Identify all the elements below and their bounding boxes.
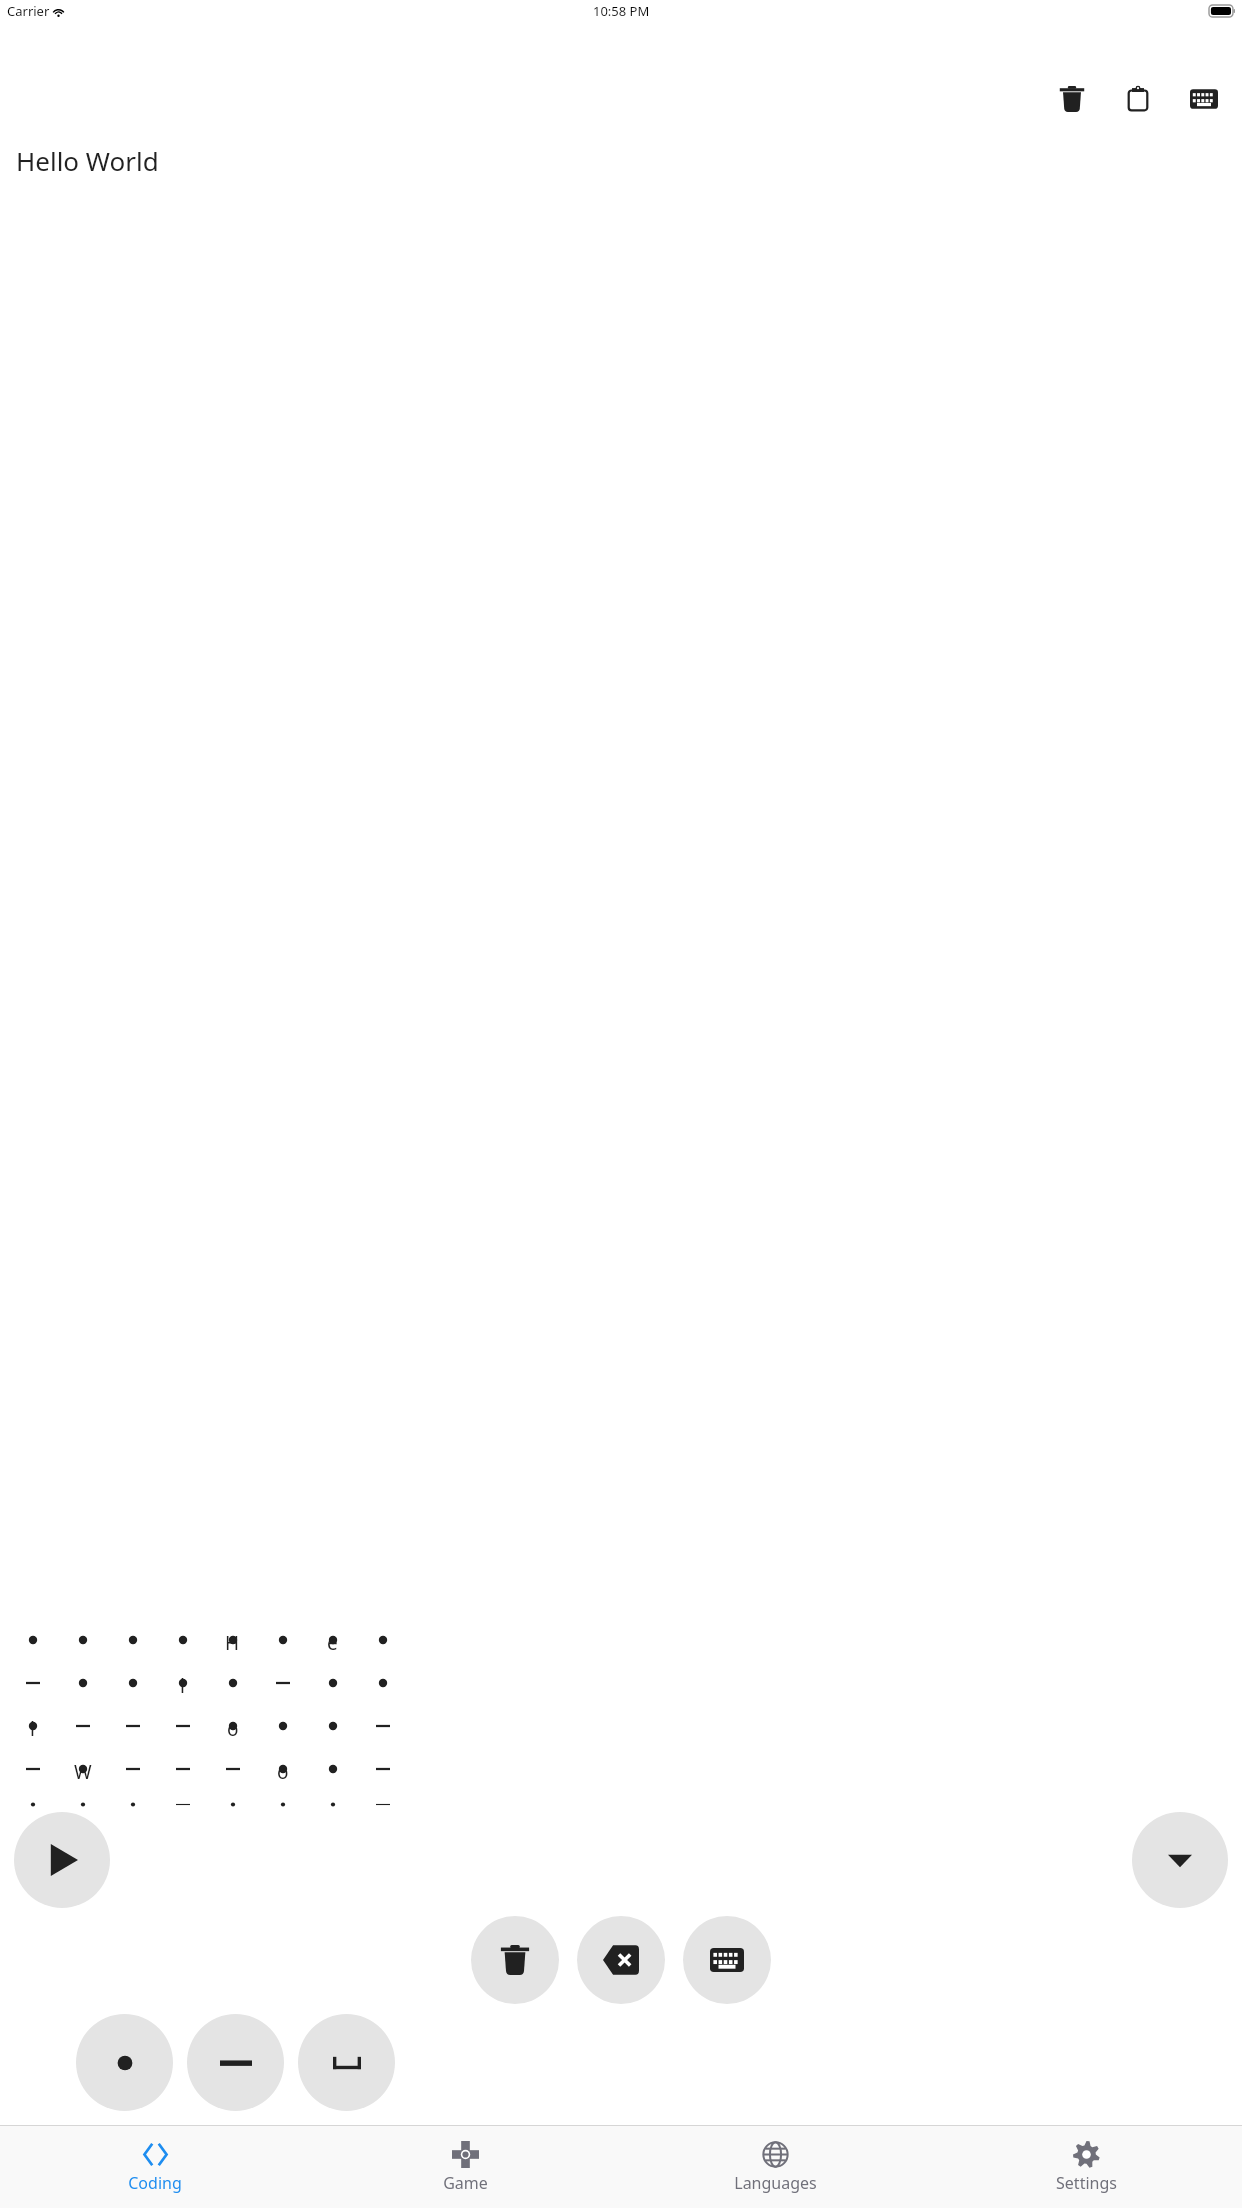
button[interactable]: Settings — [931, 2126, 1242, 2208]
staticText: 10:58 PM — [593, 2, 650, 20]
button[interactable]: Space — [298, 2014, 395, 2111]
button[interactable]: Delete all — [1050, 77, 1094, 121]
button[interactable] — [59, 1627, 106, 1664]
button[interactable] — [309, 1713, 356, 1750]
button[interactable] — [259, 1627, 306, 1664]
button[interactable] — [209, 1670, 256, 1707]
button[interactable] — [309, 1799, 356, 1808]
button[interactable] — [309, 1670, 356, 1707]
button[interactable]: e — [309, 1627, 356, 1664]
staticText: l — [30, 1716, 35, 1742]
button[interactable]: l — [159, 1670, 206, 1707]
staticText: Coding — [128, 2172, 182, 2194]
button[interactable] — [359, 1799, 406, 1808]
button[interactable] — [109, 1799, 156, 1808]
button[interactable] — [259, 1713, 306, 1750]
button[interactable] — [159, 1713, 206, 1750]
button[interactable] — [109, 1627, 156, 1664]
button[interactable] — [59, 1670, 106, 1707]
button[interactable]: Backspace — [577, 1916, 665, 2004]
staticText: Hello World — [16, 143, 159, 178]
button[interactable] — [59, 1713, 106, 1750]
button[interactable] — [159, 1799, 206, 1808]
button[interactable] — [159, 1627, 206, 1664]
staticText: o — [277, 1759, 289, 1785]
button[interactable]: Coding — [0, 2126, 310, 2208]
button[interactable] — [359, 1670, 406, 1707]
button[interactable] — [109, 1756, 156, 1793]
button[interactable]: Dash — [187, 2014, 284, 2111]
button[interactable]: o — [209, 1713, 256, 1750]
staticText: Game — [443, 2172, 488, 2194]
staticText: Settings — [1056, 2172, 1117, 2194]
staticText: Carrier — [7, 2, 50, 20]
button[interactable] — [9, 1756, 56, 1793]
button[interactable]: Delete — [471, 1916, 559, 2004]
button[interactable] — [9, 1670, 56, 1707]
button[interactable] — [59, 1799, 106, 1808]
button[interactable]: Collapse — [1132, 1812, 1228, 1908]
staticText: o — [227, 1716, 239, 1742]
button[interactable]: Dot — [76, 2014, 173, 2111]
button[interactable]: Show keyboard — [1182, 77, 1226, 121]
button[interactable]: Play — [14, 1812, 110, 1908]
button[interactable]: Languages — [620, 2126, 931, 2208]
staticText: e — [327, 1630, 338, 1656]
staticText: H — [225, 1630, 240, 1656]
staticText: Languages — [734, 2172, 817, 2194]
button[interactable]: l — [9, 1713, 56, 1750]
button[interactable]: o — [259, 1756, 306, 1793]
button[interactable] — [259, 1799, 306, 1808]
button[interactable] — [359, 1756, 406, 1793]
button[interactable] — [159, 1756, 206, 1793]
button[interactable] — [209, 1756, 256, 1793]
button[interactable]: H — [209, 1627, 256, 1664]
staticText: W — [74, 1759, 92, 1785]
button[interactable] — [359, 1627, 406, 1664]
button[interactable] — [9, 1627, 56, 1664]
staticText: l — [180, 1673, 185, 1699]
button[interactable] — [359, 1713, 406, 1750]
button[interactable]: Paste — [1116, 77, 1160, 121]
button[interactable] — [109, 1713, 156, 1750]
button[interactable]: Keyboard — [683, 1916, 771, 2004]
button[interactable] — [309, 1756, 356, 1793]
button[interactable]: W — [59, 1756, 106, 1793]
button[interactable] — [9, 1799, 56, 1808]
button[interactable] — [259, 1670, 306, 1707]
button[interactable] — [109, 1670, 156, 1707]
button[interactable] — [209, 1799, 256, 1808]
button[interactable]: Game — [310, 2126, 620, 2208]
